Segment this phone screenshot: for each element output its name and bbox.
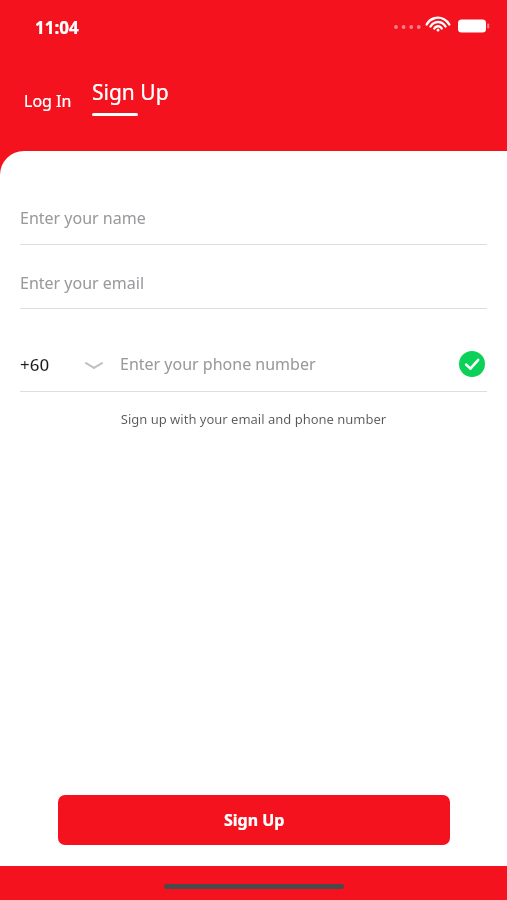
button[interactable]: Phone number verified: [459, 351, 485, 377]
button[interactable]: Log In: [22, 86, 74, 116]
button[interactable]: Select country code: [20, 353, 110, 376]
button[interactable]: Enter your phone number: [120, 353, 316, 375]
staticText: Log In: [24, 90, 72, 112]
staticText: +60: [20, 353, 50, 376]
staticText: Sign up with your email and phone number: [0, 410, 507, 428]
button[interactable]: Enter your email: [20, 272, 145, 294]
staticText: Sign Up: [224, 809, 285, 831]
button[interactable]: Enter your name: [20, 207, 146, 229]
button[interactable]: Sign Up: [90, 78, 171, 116]
button[interactable]: Sign Up: [58, 795, 450, 845]
staticText: Sign Up: [92, 78, 169, 107]
staticText: 11:04: [35, 16, 79, 39]
